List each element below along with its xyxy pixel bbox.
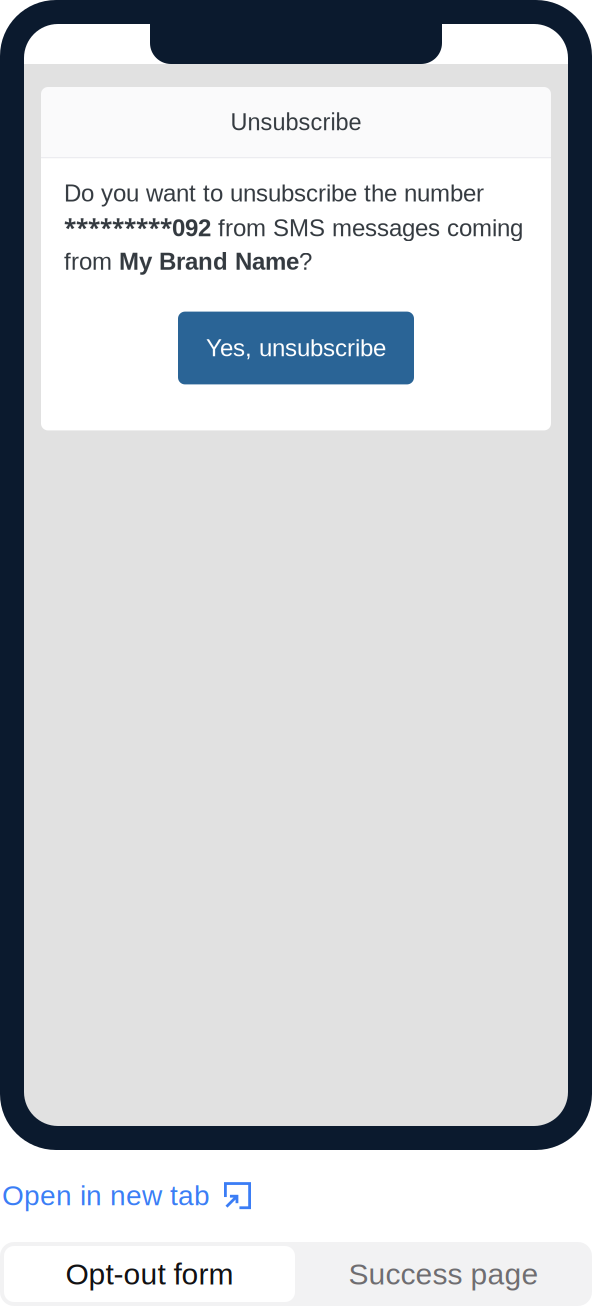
button[interactable]: Success page (295, 1242, 592, 1306)
staticText: Open in new tab (2, 1180, 210, 1211)
staticText: Unsubscribe (230, 109, 361, 135)
button[interactable]: Open in new tab (0, 1170, 592, 1221)
button[interactable]: Opt-out form (0, 1242, 295, 1306)
staticText: Do you want to unsubscribe the number **… (64, 180, 523, 275)
button[interactable]: Yes, unsubscribe (178, 312, 414, 384)
staticText: Opt-out form (65, 1257, 233, 1291)
staticText: Success page (348, 1257, 538, 1291)
staticText: Yes, unsubscribe (206, 335, 386, 361)
